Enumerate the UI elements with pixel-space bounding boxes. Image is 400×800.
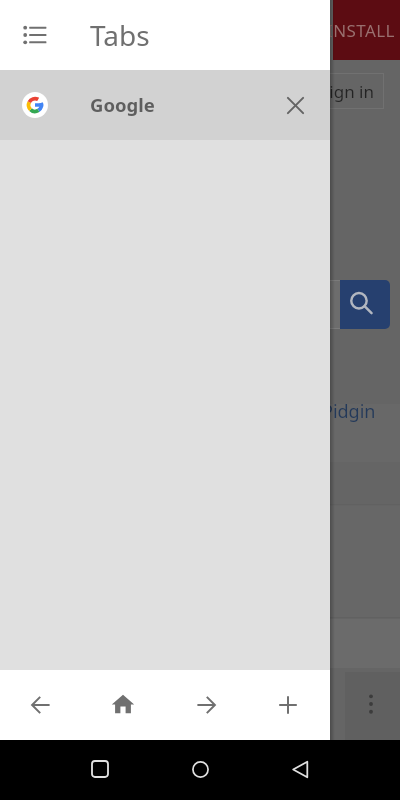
button[interactable]: Forward <box>178 677 234 733</box>
staticText: Pidgin <box>322 399 376 424</box>
button[interactable]: INSTALL <box>333 0 400 60</box>
staticText: Google <box>90 92 155 117</box>
button[interactable]: New tab <box>260 677 316 733</box>
button[interactable]: Recents <box>76 745 124 793</box>
staticText: Sign in <box>320 80 374 103</box>
button[interactable]: More options <box>345 672 400 740</box>
button[interactable]: Home <box>176 745 224 793</box>
staticText: INSTALL <box>327 19 395 42</box>
button[interactable]: Close tab <box>267 77 323 133</box>
button[interactable]: Search <box>340 280 390 329</box>
button[interactable]: Tab list <box>7 7 63 63</box>
button[interactable]: Home <box>95 677 151 733</box>
button[interactable]: Back <box>13 677 69 733</box>
button[interactable]: Google <box>0 70 330 140</box>
button[interactable]: Back <box>276 745 324 793</box>
staticText: Tabs <box>90 16 150 54</box>
button[interactable]: Sign in <box>310 73 384 109</box>
